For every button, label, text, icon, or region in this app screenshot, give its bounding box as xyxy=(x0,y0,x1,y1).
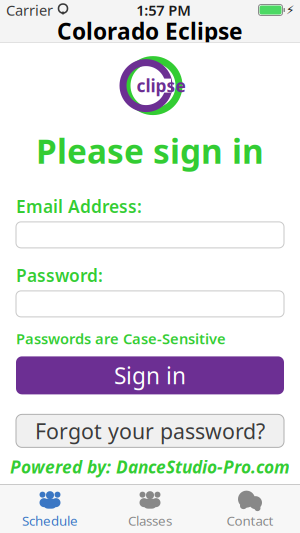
staticText: Password: xyxy=(16,264,103,287)
button[interactable]: Schedule xyxy=(0,485,100,533)
button[interactable]: Contact xyxy=(200,485,300,533)
staticText: ⚡︎ xyxy=(286,3,294,17)
staticText: Sign in xyxy=(114,360,186,390)
staticText: Contact xyxy=(226,512,273,529)
staticText: Carrier xyxy=(6,0,53,20)
staticText: Please sign in xyxy=(36,129,264,173)
staticText: Email Address: xyxy=(16,195,142,218)
button[interactable]: Classes xyxy=(100,485,200,533)
staticText: Passwords are Case-Sensitive xyxy=(16,329,226,348)
button[interactable]: Sign in xyxy=(16,356,284,394)
staticText: 1:57 PM xyxy=(136,0,191,20)
staticText: Powered by: DanceStudio-Pro.com xyxy=(10,455,290,478)
staticText: Colorado Eclipse xyxy=(57,16,243,46)
staticText: Classes xyxy=(128,512,172,529)
staticText: clipse xyxy=(136,74,185,97)
staticText: Forgot your password? xyxy=(35,417,265,445)
button[interactable]: Forgot your password? xyxy=(16,414,284,447)
staticText: Schedule xyxy=(22,512,78,529)
